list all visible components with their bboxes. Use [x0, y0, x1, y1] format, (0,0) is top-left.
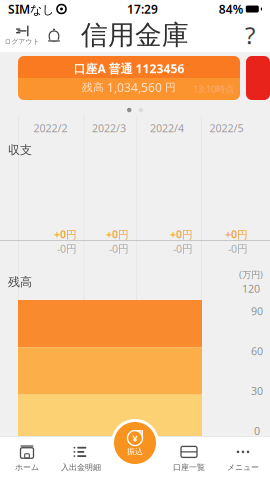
staticText: +0円: [170, 227, 193, 241]
staticText: 振込: [127, 447, 143, 456]
button[interactable]: 口座一覧: [162, 437, 216, 480]
staticText: -0円: [57, 241, 77, 256]
staticText: 13:10時点: [193, 83, 234, 95]
staticText: 60: [251, 344, 263, 358]
staticText: 残高: [82, 81, 104, 94]
staticText: +0円: [106, 227, 129, 241]
staticText: +0円: [225, 227, 248, 241]
staticText: 信用金庫: [81, 19, 189, 51]
button[interactable]: 通知: [40, 18, 68, 52]
button[interactable]: ホーム: [0, 437, 54, 480]
staticText: 収支: [8, 143, 32, 157]
button[interactable]: ログアウト: [4, 18, 40, 52]
staticText: -0円: [228, 241, 248, 256]
staticText: SIMなし: [8, 1, 54, 17]
staticText: 84%: [219, 1, 244, 17]
staticText: 90: [251, 304, 263, 318]
button[interactable]: 次の口座: [246, 56, 270, 100]
staticText: 30: [251, 384, 263, 398]
staticText: 2022/5: [209, 121, 243, 135]
staticText: 円: [165, 81, 176, 94]
staticText: 口座一覧: [173, 462, 205, 472]
button[interactable]: メニュー: [216, 437, 270, 480]
staticText: -0円: [173, 241, 193, 256]
staticText: 2022/2: [33, 121, 67, 135]
staticText: 入出金明細: [61, 462, 101, 472]
staticText: 17:29: [127, 1, 158, 17]
staticText: 0: [254, 424, 260, 438]
staticText: ?: [245, 19, 255, 51]
staticText: 1,034,560: [107, 79, 162, 95]
staticText: (万円): [239, 268, 263, 281]
staticText: 120: [242, 282, 260, 296]
staticText: 2022/3: [92, 121, 126, 135]
staticText: ¥: [132, 432, 137, 444]
button[interactable]: ヘルプ: [234, 18, 266, 52]
staticText: メニュー: [227, 462, 259, 472]
staticText: 2022/4: [150, 121, 184, 135]
staticText: 口座A 普通 1123456: [73, 61, 184, 76]
staticText: -0円: [109, 241, 129, 256]
staticText: +0円: [54, 227, 77, 241]
staticText: 残高: [8, 275, 32, 289]
staticText: ホーム: [15, 462, 39, 472]
staticText: ログアウト: [4, 37, 39, 46]
button[interactable]: 入出金明細: [54, 437, 108, 480]
button[interactable]: 振込: [110, 418, 160, 468]
button[interactable]: 口座A 普通 1123456: [18, 56, 240, 100]
